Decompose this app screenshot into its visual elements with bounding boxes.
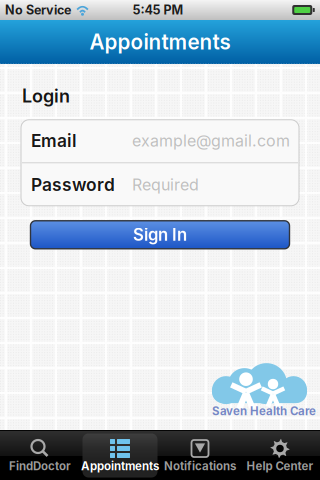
button[interactable]: Email [21, 119, 299, 162]
staticText: example@gmail.com [132, 131, 290, 150]
button[interactable]: FindDoctor [0, 433, 80, 480]
staticText: No Service [5, 2, 71, 18]
staticText: Required [132, 175, 199, 194]
button[interactable]: Password [21, 163, 299, 206]
button[interactable]: Appointments [80, 433, 160, 480]
staticText: Login [22, 85, 70, 107]
staticText: Password [31, 174, 115, 195]
staticText: Help Center [246, 459, 313, 473]
staticText: Saven Health Care [212, 404, 316, 418]
staticText: FindDoctor [9, 459, 71, 473]
button[interactable]: Notifications [160, 433, 240, 480]
button[interactable]: Help Center [240, 433, 320, 480]
staticText: Notifications [164, 459, 236, 473]
button[interactable]: Sign In [30, 221, 289, 249]
staticText: Appointments [81, 459, 159, 473]
staticText: Sign In [133, 225, 187, 245]
staticText: Email [31, 130, 77, 151]
staticText: 5:45 PM [132, 2, 183, 18]
staticText: Appointments [89, 29, 230, 54]
